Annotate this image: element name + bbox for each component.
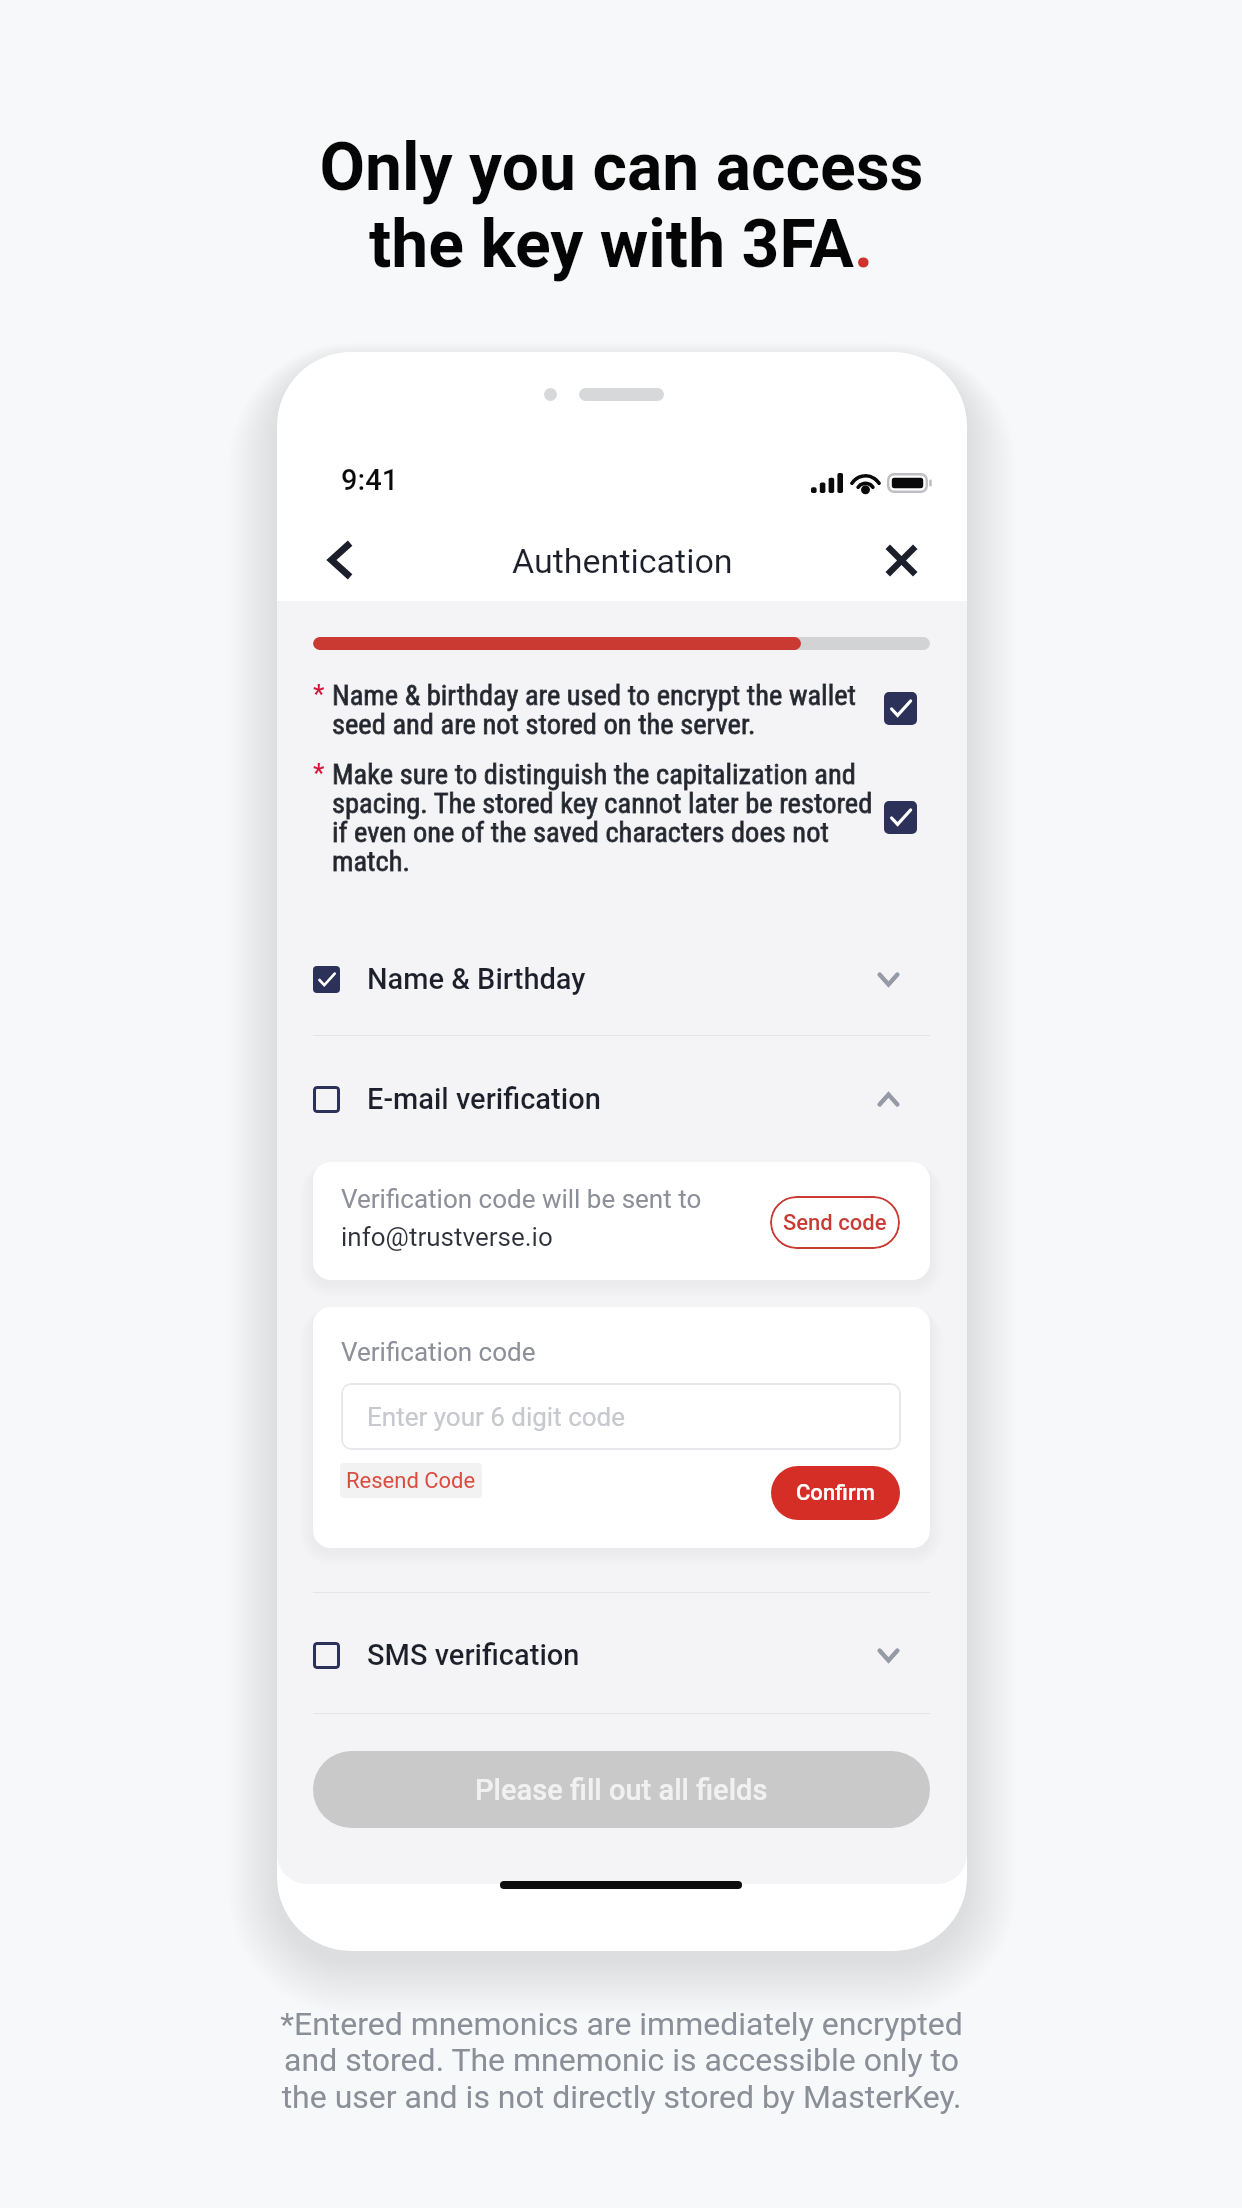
button[interactable]: Confirm bbox=[771, 1466, 900, 1520]
staticText: Authentication bbox=[512, 541, 733, 581]
staticText: E-mail verification bbox=[367, 1082, 601, 1116]
staticText: SMS verification bbox=[367, 1638, 580, 1672]
staticText: Verification code bbox=[341, 1337, 536, 1367]
button[interactable]: Checked bbox=[884, 692, 917, 725]
staticText: Enter your 6 digit code bbox=[367, 1402, 626, 1432]
staticText: Confirm bbox=[796, 1480, 875, 1506]
staticText: Verification code will be sent to bbox=[341, 1184, 702, 1214]
staticText: * bbox=[313, 680, 325, 709]
button[interactable]: Checked bbox=[313, 966, 340, 993]
staticText: Resend Code bbox=[346, 1468, 476, 1494]
staticText: Name & Birthday bbox=[367, 962, 586, 996]
button[interactable]: Close bbox=[871, 530, 931, 590]
staticText: *Entered mnemonics are immediately encry… bbox=[280, 2005, 963, 2116]
button[interactable]: Checked bbox=[884, 801, 917, 834]
button[interactable]: Enter your 6 digit code bbox=[341, 1383, 901, 1450]
staticText: 9:41 bbox=[341, 463, 399, 497]
staticText: * bbox=[313, 759, 325, 788]
button[interactable]: Unchecked bbox=[313, 1086, 340, 1113]
button[interactable]: Please fill out all fields bbox=[313, 1751, 930, 1828]
button[interactable]: Resend Code bbox=[340, 1463, 482, 1498]
staticText: Please fill out all fields bbox=[475, 1773, 768, 1807]
staticText: . bbox=[854, 206, 874, 283]
button[interactable]: Checked bbox=[313, 931, 930, 1027]
staticText: info@trustverse.io bbox=[341, 1222, 553, 1252]
staticText: Make sure to distinguish the capitalizat… bbox=[332, 758, 892, 878]
staticText: Send code bbox=[783, 1210, 887, 1236]
button[interactable]: Back bbox=[309, 530, 369, 590]
staticText: Make sure to distinguish the capitalizat… bbox=[332, 758, 892, 878]
button[interactable]: Unchecked bbox=[313, 1607, 930, 1703]
staticText: Name & birthday are used to encrypt the … bbox=[332, 679, 892, 741]
button[interactable]: Send code bbox=[770, 1196, 900, 1249]
staticText: the key with 3FA bbox=[369, 206, 854, 283]
staticText: Only you can access bbox=[319, 129, 924, 206]
button[interactable]: Unchecked bbox=[313, 1642, 340, 1669]
staticText: Name & birthday are used to encrypt the … bbox=[332, 679, 892, 741]
button[interactable]: Unchecked bbox=[313, 1051, 930, 1147]
